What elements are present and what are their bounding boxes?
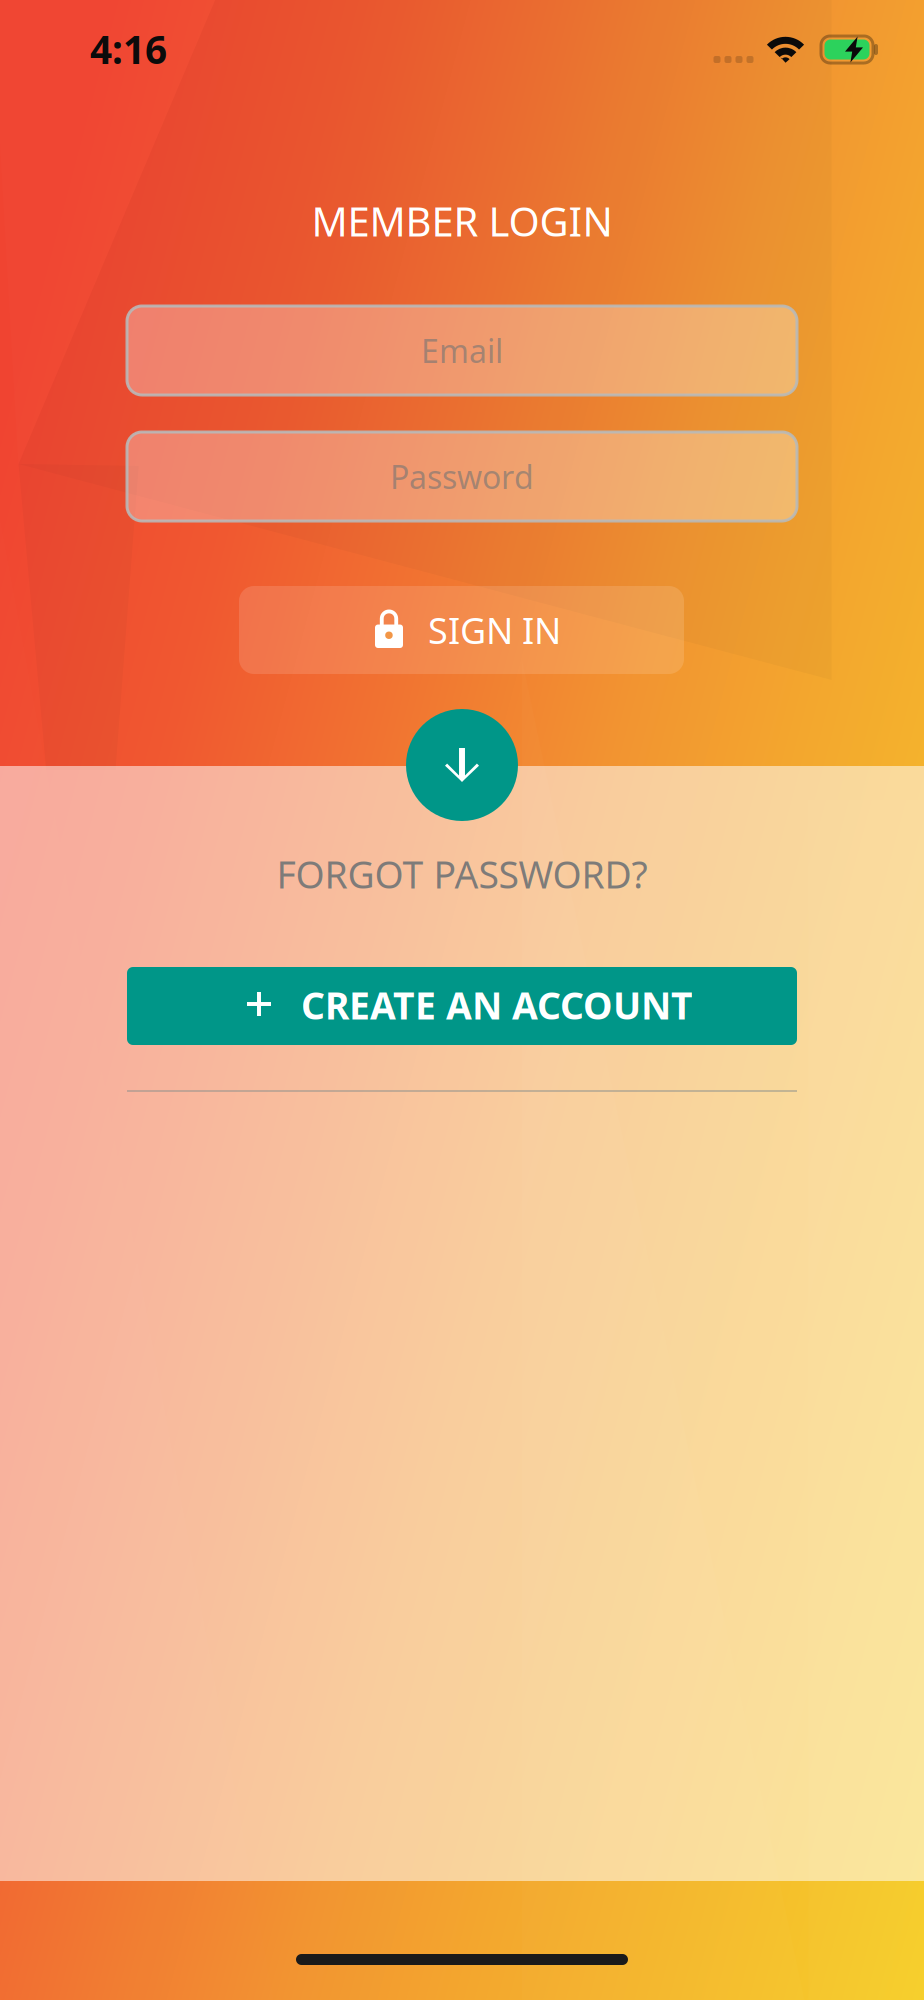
staticText: Email [421, 329, 503, 372]
button[interactable]: Scroll down [406, 709, 518, 821]
staticText: MEMBER LOGIN [311, 194, 612, 247]
staticText: FORGOT PASSWORD? [276, 849, 647, 899]
button[interactable]: CREATE AN ACCOUNT [127, 967, 797, 1045]
staticText: 4:16 [90, 23, 167, 75]
staticText: Password [390, 455, 534, 498]
staticText: SIGN IN [428, 606, 561, 654]
button[interactable]: FORGOT PASSWORD? [212, 847, 712, 901]
staticText: CREATE AN ACCOUNT [301, 980, 693, 1030]
button[interactable]: SIGN IN [239, 586, 684, 674]
